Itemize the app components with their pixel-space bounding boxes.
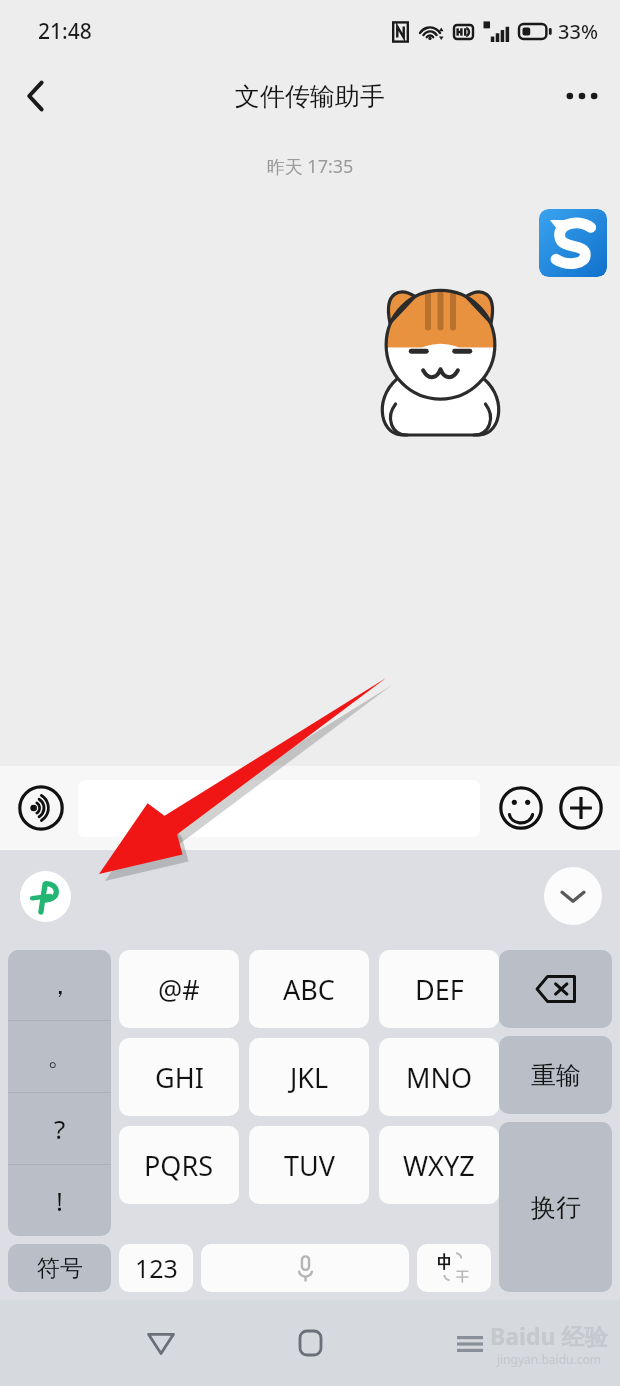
button[interactable]: ?: [8, 1093, 111, 1164]
button[interactable]: More functions: [554, 781, 608, 835]
staticText: Baidu 经验: [490, 1320, 608, 1351]
button[interactable]: More options: [544, 62, 620, 130]
staticText: 换行: [531, 1192, 581, 1223]
button[interactable]: Backspace: [499, 950, 612, 1028]
staticText: WXYZ: [403, 1147, 475, 1184]
button[interactable]: Voice input: [12, 779, 70, 837]
staticText: @#: [158, 971, 200, 1008]
button[interactable]: Hide keyboard: [544, 867, 602, 925]
button[interactable]: TUV: [249, 1126, 369, 1204]
button[interactable]: Home: [274, 1307, 346, 1379]
button[interactable]: PQRS: [119, 1126, 239, 1204]
staticText: 21:48: [38, 17, 92, 46]
staticText: JKL: [290, 1059, 329, 1096]
button[interactable]: Input method settings: [20, 871, 71, 922]
button[interactable]: 123: [119, 1244, 193, 1292]
button[interactable]: @#: [119, 950, 239, 1028]
button[interactable]: 重输: [499, 1036, 612, 1114]
button[interactable]: Message input: [78, 780, 480, 837]
button[interactable]: !: [8, 1165, 111, 1236]
button[interactable]: Back: [125, 1307, 197, 1379]
button[interactable]: Back: [0, 62, 72, 130]
staticText: ?: [54, 1111, 66, 1146]
staticText: ABC: [283, 971, 335, 1008]
button[interactable]: Space: [201, 1244, 409, 1292]
staticText: 。: [47, 1040, 73, 1073]
staticText: TUV: [284, 1147, 335, 1184]
staticText: ，: [47, 969, 73, 1002]
button[interactable]: GHI: [119, 1038, 239, 1116]
staticText: DEF: [415, 971, 464, 1008]
button[interactable]: 换行: [499, 1122, 612, 1292]
button[interactable]: JKL: [249, 1038, 369, 1116]
button[interactable]: Chinese English toggle: [417, 1244, 491, 1292]
button[interactable]: MNO: [379, 1038, 499, 1116]
staticText: 重输: [531, 1060, 581, 1091]
staticText: jingyan.baidu.com: [497, 1351, 601, 1367]
staticText: 文件传输助手: [235, 81, 385, 112]
button[interactable]: Avatar: [539, 209, 607, 277]
staticText: !: [56, 1183, 63, 1218]
button[interactable]: Emoji: [494, 781, 548, 835]
button[interactable]: 符号: [8, 1244, 111, 1292]
staticText: 123: [135, 1251, 178, 1285]
button[interactable]: ABC: [249, 950, 369, 1028]
staticText: 符号: [37, 1254, 83, 1283]
staticText: GHI: [155, 1059, 204, 1096]
staticText: 33%: [558, 18, 598, 45]
staticText: PQRS: [144, 1147, 214, 1184]
staticText: 昨天 17:35: [0, 154, 620, 179]
button[interactable]: DEF: [379, 950, 499, 1028]
button[interactable]: 。: [8, 1021, 111, 1092]
button[interactable]: ，: [8, 950, 111, 1020]
button[interactable]: WXYZ: [379, 1126, 499, 1204]
staticText: MNO: [406, 1059, 473, 1096]
